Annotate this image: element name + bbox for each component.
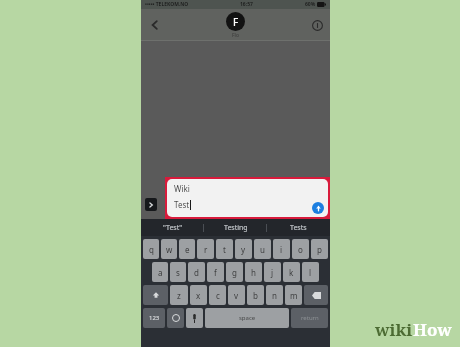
staticText: p (317, 244, 322, 255)
button[interactable]: 123 (143, 308, 165, 328)
button[interactable]: Testing (204, 219, 267, 236)
staticText: j (271, 267, 274, 278)
button[interactable]: d (188, 262, 205, 282)
staticText: F (233, 15, 239, 29)
button[interactable]: w (161, 239, 177, 259)
button[interactable]: Shift (143, 285, 168, 305)
staticText: o (298, 244, 303, 255)
staticText: space (239, 314, 256, 322)
staticText: m (290, 290, 298, 301)
button[interactable]: t (216, 239, 233, 259)
staticText: l (309, 267, 312, 278)
button[interactable]: j (264, 262, 281, 282)
staticText: How (413, 318, 452, 341)
button[interactable]: m (285, 285, 302, 305)
staticText: "Test" (163, 223, 183, 233)
button[interactable]: s (170, 262, 186, 282)
button[interactable]: k (283, 262, 300, 282)
staticText: k (289, 267, 294, 278)
button[interactable]: o (292, 239, 309, 259)
button[interactable]: e (179, 239, 195, 259)
button[interactable]: return (291, 308, 328, 328)
staticText: c (216, 290, 220, 301)
button[interactable]: p (311, 239, 328, 259)
button[interactable]: Backspace (304, 285, 328, 305)
button[interactable]: v (228, 285, 245, 305)
staticText: d (194, 267, 199, 278)
button[interactable]: x (190, 285, 207, 305)
button[interactable]: y (235, 239, 252, 259)
button[interactable]: b (247, 285, 264, 305)
button[interactable]: q (143, 239, 159, 259)
staticText: i (280, 244, 283, 255)
staticText: Wiki (174, 183, 190, 194)
staticText: 123 (149, 314, 160, 322)
staticText: Flo (232, 32, 239, 39)
button[interactable]: Tests (267, 219, 330, 236)
staticText: z (177, 290, 181, 301)
staticText: e (185, 244, 190, 255)
button[interactable]: z (170, 285, 188, 305)
staticText: y (241, 244, 246, 255)
staticText: return (301, 314, 319, 322)
staticText: g (232, 267, 237, 278)
staticText: a (158, 267, 163, 278)
button[interactable]: Dictate (186, 308, 203, 328)
staticText: ••••• TELEKOM.NO (145, 1, 189, 8)
staticText: Testing (224, 223, 248, 233)
staticText: 16:57 (240, 1, 253, 8)
staticText: v (234, 290, 239, 301)
staticText: q (149, 244, 154, 255)
staticText: s (176, 267, 180, 278)
staticText: r (204, 244, 208, 255)
staticText: Tests (290, 223, 307, 233)
staticText: n (272, 290, 277, 301)
staticText: Test (174, 199, 190, 210)
staticText: u (260, 244, 265, 255)
button[interactable]: g (226, 262, 243, 282)
button[interactable]: a (152, 262, 168, 282)
button[interactable]: c (209, 285, 226, 305)
button[interactable]: Wiki (167, 179, 328, 217)
button[interactable]: l (302, 262, 319, 282)
staticText: h (251, 267, 256, 278)
staticText: w (166, 244, 173, 255)
button[interactable]: Send (312, 202, 324, 214)
button[interactable]: Emoji (167, 308, 184, 328)
button[interactable]: n (266, 285, 283, 305)
staticText: x (196, 290, 201, 301)
button[interactable]: u (254, 239, 271, 259)
staticText: wiki (375, 318, 413, 341)
button[interactable]: i (273, 239, 290, 259)
button[interactable]: "Test" (141, 219, 204, 236)
button[interactable]: Info (308, 16, 326, 34)
staticText: 60% (305, 1, 316, 8)
button[interactable]: f (207, 262, 224, 282)
staticText: b (253, 290, 258, 301)
button[interactable]: F (226, 12, 245, 39)
button[interactable]: h (245, 262, 262, 282)
button[interactable]: space (205, 308, 289, 328)
staticText: f (214, 267, 217, 278)
staticText: t (223, 244, 226, 255)
button[interactable]: r (197, 239, 214, 259)
button[interactable]: Expand (145, 198, 157, 211)
button[interactable]: Back (145, 15, 165, 35)
